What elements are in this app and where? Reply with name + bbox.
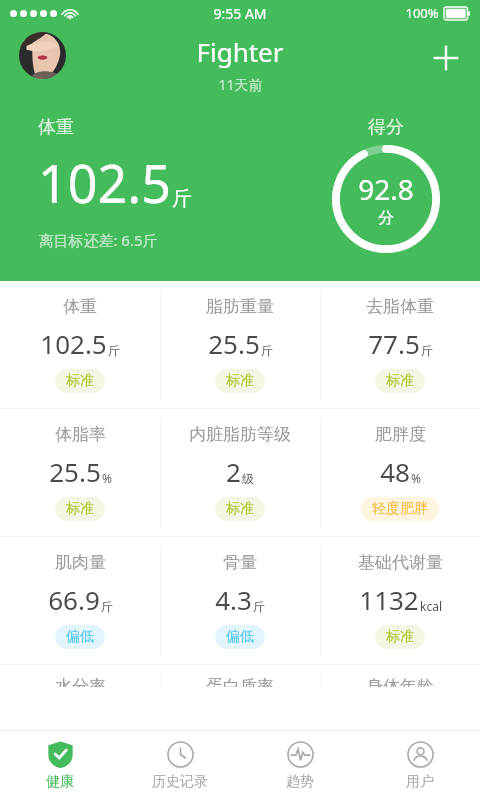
staticText: 轻度肥胖	[372, 500, 428, 518]
staticText: 肌肉量	[55, 552, 106, 573]
staticText: 脂肪重量	[206, 296, 274, 317]
staticText: 11天前	[218, 75, 263, 94]
staticText: 历史记录	[152, 773, 208, 791]
button[interactable]: 92.8	[332, 145, 440, 253]
button[interactable]: 历史记录	[120, 731, 240, 800]
staticText: 蛋白质率	[206, 676, 274, 687]
staticText: 斤	[101, 599, 113, 614]
staticText: 得分	[368, 116, 404, 139]
staticText: 去脂体重	[366, 296, 434, 317]
button[interactable]: 蛋白质率	[160, 665, 320, 687]
staticText: 偏低	[226, 628, 254, 646]
staticText: 体重	[63, 296, 97, 317]
staticText: 66.9	[48, 582, 100, 617]
button[interactable]: 肥胖度	[320, 409, 480, 536]
staticText: 标准	[66, 500, 94, 518]
staticText: 102.5	[38, 147, 171, 218]
button[interactable]: 脂肪重量	[160, 281, 320, 408]
button[interactable]: 身体年龄	[320, 665, 480, 687]
staticText: 4.3	[215, 582, 252, 617]
staticText: 斤	[172, 186, 192, 211]
staticText: 肥胖度	[375, 424, 426, 445]
button[interactable]: 肌肉量	[0, 537, 160, 664]
staticText: 内脏脂肪等级	[189, 424, 291, 445]
staticText: 25.5	[208, 326, 260, 361]
button[interactable]: 体重	[0, 281, 160, 408]
staticText: 48	[380, 454, 410, 489]
staticText: 水分率	[55, 676, 106, 687]
button[interactable]: 趋势	[240, 731, 360, 800]
button[interactable]: 去脂体重	[320, 281, 480, 408]
staticText: 102.5	[40, 326, 107, 361]
button[interactable]: 水分率	[0, 665, 160, 687]
staticText: %	[411, 470, 421, 486]
staticText: 健康	[46, 773, 74, 791]
staticText: 级	[242, 471, 254, 486]
staticText: 体重	[38, 116, 74, 139]
staticText: %	[102, 470, 112, 486]
staticText: kcal	[420, 598, 442, 614]
staticText: 基础代谢量	[358, 552, 443, 573]
button[interactable]: 体脂率	[0, 409, 160, 536]
staticText: 斤	[421, 343, 433, 358]
staticText: 2	[226, 454, 241, 489]
staticText: 趋势	[286, 773, 314, 791]
staticText: 标准	[66, 372, 94, 390]
staticText: 标准	[226, 500, 254, 518]
staticText: 用户	[406, 773, 434, 791]
staticText: 92.8	[358, 170, 414, 208]
staticText: 77.5	[368, 326, 420, 361]
button[interactable]: 骨量	[160, 537, 320, 664]
staticText: 标准	[386, 628, 414, 646]
staticText: 骨量	[223, 552, 257, 573]
staticText: 9:55 AM	[213, 4, 267, 23]
staticText: 斤	[108, 343, 120, 358]
staticText: 偏低	[66, 628, 94, 646]
staticText: 体脂率	[55, 424, 106, 445]
button[interactable]: 健康	[0, 731, 120, 800]
staticText: 100%	[405, 4, 439, 22]
staticText: 标准	[226, 372, 254, 390]
staticText: 分	[378, 208, 394, 228]
button[interactable]: 基础代谢量	[320, 537, 480, 664]
button[interactable]: 内脏脂肪等级	[160, 409, 320, 536]
staticText: 标准	[386, 372, 414, 390]
button[interactable]: Add measurement	[422, 34, 470, 82]
staticText: 离目标还差: 6.5斤	[38, 230, 158, 250]
staticText: 身体年龄	[366, 676, 434, 687]
staticText: 斤	[253, 599, 265, 614]
staticText: Fighter	[196, 34, 284, 69]
staticText: 1132	[359, 582, 419, 617]
button[interactable]: 用户	[360, 731, 480, 800]
button[interactable]: Profile photo	[19, 32, 66, 79]
staticText: 25.5	[49, 454, 101, 489]
staticText: 斤	[261, 343, 273, 358]
